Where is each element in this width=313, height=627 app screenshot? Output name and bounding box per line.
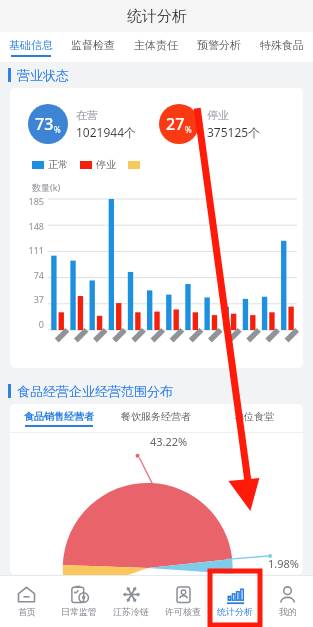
staticText: 73 bbox=[35, 113, 54, 135]
button[interactable]: 基础信息 bbox=[0, 32, 62, 62]
staticText: 单位食堂 bbox=[234, 410, 274, 423]
staticText: 停业 bbox=[96, 158, 116, 171]
staticText: 主体责任 bbox=[134, 38, 178, 52]
staticText: 数量(k) bbox=[32, 181, 61, 193]
staticText: 预警分析 bbox=[197, 38, 241, 52]
staticText: 食品销售经营者 bbox=[24, 410, 94, 423]
staticText: 停业 bbox=[207, 108, 229, 122]
staticText: 首页 bbox=[18, 606, 36, 617]
staticText: 正常 bbox=[48, 158, 68, 171]
button[interactable]: 许可核查 bbox=[157, 575, 209, 627]
staticText: 111 bbox=[28, 244, 44, 254]
button[interactable]: 食品销售经营者 bbox=[10, 404, 107, 432]
button[interactable]: 监督检查 bbox=[62, 32, 124, 62]
staticText: 185 bbox=[28, 195, 44, 205]
button[interactable]: 首页 bbox=[0, 575, 53, 627]
button[interactable]: 日常监管 bbox=[53, 575, 105, 627]
staticText: 江苏冷链 bbox=[113, 606, 149, 617]
staticText: 监督检查 bbox=[71, 38, 115, 52]
button[interactable]: 我的 bbox=[261, 575, 313, 627]
staticText: 27 bbox=[166, 113, 185, 135]
staticText: 基础信息 bbox=[9, 38, 53, 52]
staticText: 统计分析 bbox=[217, 606, 253, 617]
button[interactable]: 特殊食品 bbox=[250, 32, 313, 62]
staticText: 许可核查 bbox=[165, 606, 201, 617]
button[interactable]: 主体责任 bbox=[124, 32, 187, 62]
staticText: % bbox=[54, 124, 61, 135]
staticText: 43.22% bbox=[150, 434, 188, 449]
staticText: 日常监管 bbox=[61, 606, 97, 617]
staticText: 375125个 bbox=[207, 124, 261, 140]
button[interactable]: 单位食堂 bbox=[205, 404, 303, 432]
button[interactable]: 预警分析 bbox=[187, 32, 250, 62]
staticText: 74 bbox=[33, 269, 44, 279]
staticText: 统计分析 bbox=[127, 7, 187, 26]
button[interactable]: 统计分析 bbox=[209, 575, 261, 627]
staticText: 特殊食品 bbox=[260, 38, 304, 52]
staticText: 餐饮服务经营者 bbox=[121, 410, 191, 423]
staticText: 148 bbox=[28, 220, 44, 230]
staticText: 1021944个 bbox=[76, 124, 137, 140]
staticText: 在营 bbox=[76, 108, 98, 122]
staticText: 37 bbox=[33, 293, 44, 303]
staticText: 食品经营企业经营范围分布 bbox=[17, 383, 173, 399]
staticText: 1.98% bbox=[268, 556, 299, 571]
button[interactable]: 江苏冷链 bbox=[105, 575, 157, 627]
staticText: 0 bbox=[38, 318, 44, 328]
staticText: 营业状态 bbox=[17, 67, 69, 83]
staticText: 我的 bbox=[279, 606, 297, 617]
button[interactable]: 餐饮服务经营者 bbox=[107, 404, 205, 432]
staticText: % bbox=[185, 124, 192, 135]
